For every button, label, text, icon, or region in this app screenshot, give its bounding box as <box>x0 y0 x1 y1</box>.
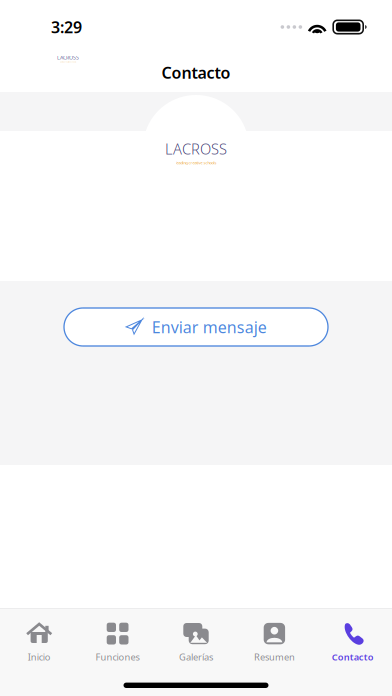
staticText: Enviar mensaje <box>152 316 267 338</box>
staticText: Galerías <box>179 651 213 663</box>
button[interactable]: Inicio <box>0 609 78 671</box>
staticText: Contacto <box>332 651 374 663</box>
staticText: 3:29 <box>51 16 82 38</box>
button[interactable]: Contacto <box>314 609 392 671</box>
staticText: leading creative schools <box>175 160 216 165</box>
button[interactable]: Funciones <box>78 609 157 671</box>
button[interactable]: Resumen <box>235 609 314 671</box>
button[interactable]: Enviar mensaje <box>64 308 328 346</box>
button[interactable]: Galerías <box>157 609 235 671</box>
staticText: Resumen <box>254 651 295 663</box>
staticText: leading creative schools <box>59 61 76 63</box>
button[interactable]: Back to LACROSS <box>0 48 93 75</box>
staticText: LACROSS <box>165 139 227 158</box>
staticText: LACROSS <box>57 54 79 61</box>
staticText: Inicio <box>28 651 51 663</box>
staticText: Contacto <box>161 62 230 83</box>
staticText: Funciones <box>96 651 140 663</box>
